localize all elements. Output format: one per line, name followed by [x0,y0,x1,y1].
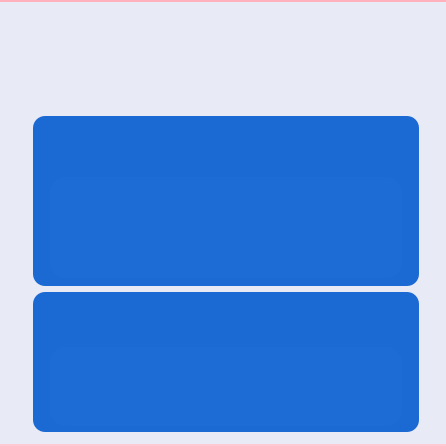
button[interactable]: Primary action [33,116,419,286]
button[interactable]: Secondary action [33,292,419,432]
